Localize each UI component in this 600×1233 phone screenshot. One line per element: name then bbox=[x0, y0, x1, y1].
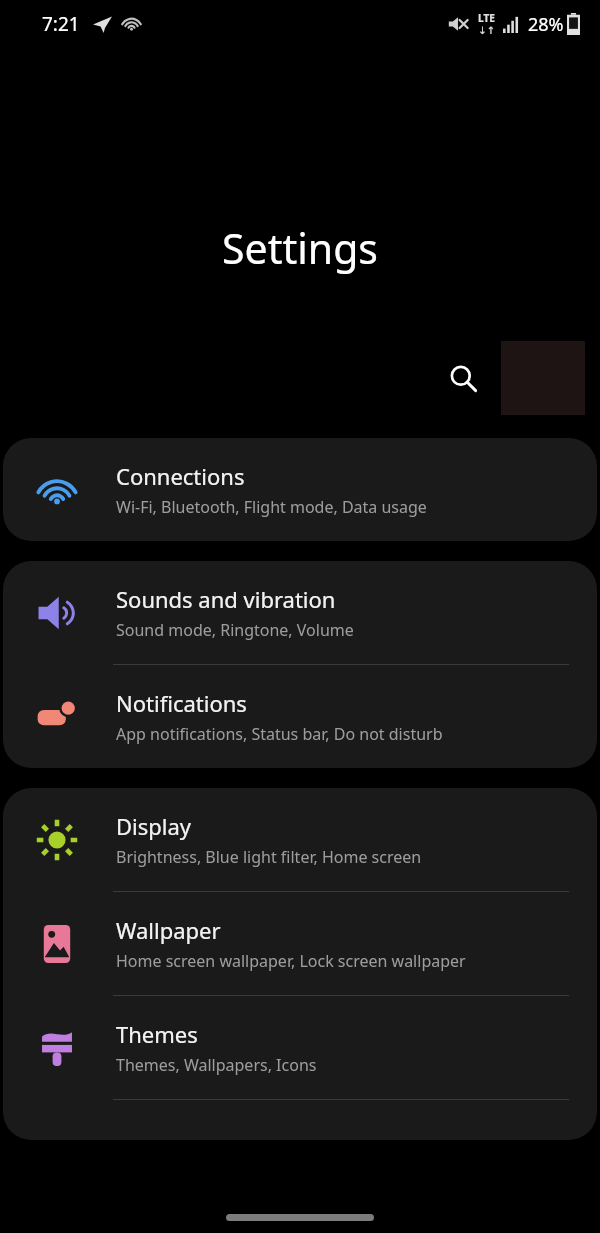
staticText: Notifications bbox=[116, 688, 247, 718]
staticText: App notifications, Status bar, Do not di… bbox=[116, 723, 443, 745]
button[interactable]: Search bbox=[440, 355, 486, 401]
staticText: Brightness, Blue light filter, Home scre… bbox=[116, 846, 422, 868]
staticText: ↓↑ bbox=[478, 25, 495, 37]
button[interactable]: Sounds and vibration bbox=[3, 561, 597, 664]
staticText: Connections bbox=[116, 461, 245, 491]
staticText: Sound mode, Ringtone, Volume bbox=[116, 619, 354, 641]
button[interactable]: Display bbox=[3, 788, 597, 891]
button[interactable]: Themes bbox=[3, 996, 597, 1099]
staticText: Themes, Wallpapers, Icons bbox=[116, 1054, 317, 1076]
staticText: Wi-Fi, Bluetooth, Flight mode, Data usag… bbox=[116, 496, 427, 518]
staticText: LTE bbox=[478, 11, 495, 25]
staticText: Home screen wallpaper, Lock screen wallp… bbox=[116, 950, 466, 972]
staticText: Wallpaper bbox=[116, 915, 221, 945]
button[interactable]: Wallpaper bbox=[3, 892, 597, 995]
button[interactable]: Connections bbox=[3, 438, 597, 541]
button[interactable]: Notifications bbox=[3, 665, 597, 768]
staticText: Sounds and vibration bbox=[116, 584, 336, 614]
staticText: Settings bbox=[0, 220, 600, 276]
staticText: Display bbox=[116, 811, 192, 841]
staticText: Themes bbox=[116, 1019, 198, 1049]
staticText: 7:21 bbox=[42, 11, 80, 37]
staticText: 28% bbox=[528, 12, 564, 37]
